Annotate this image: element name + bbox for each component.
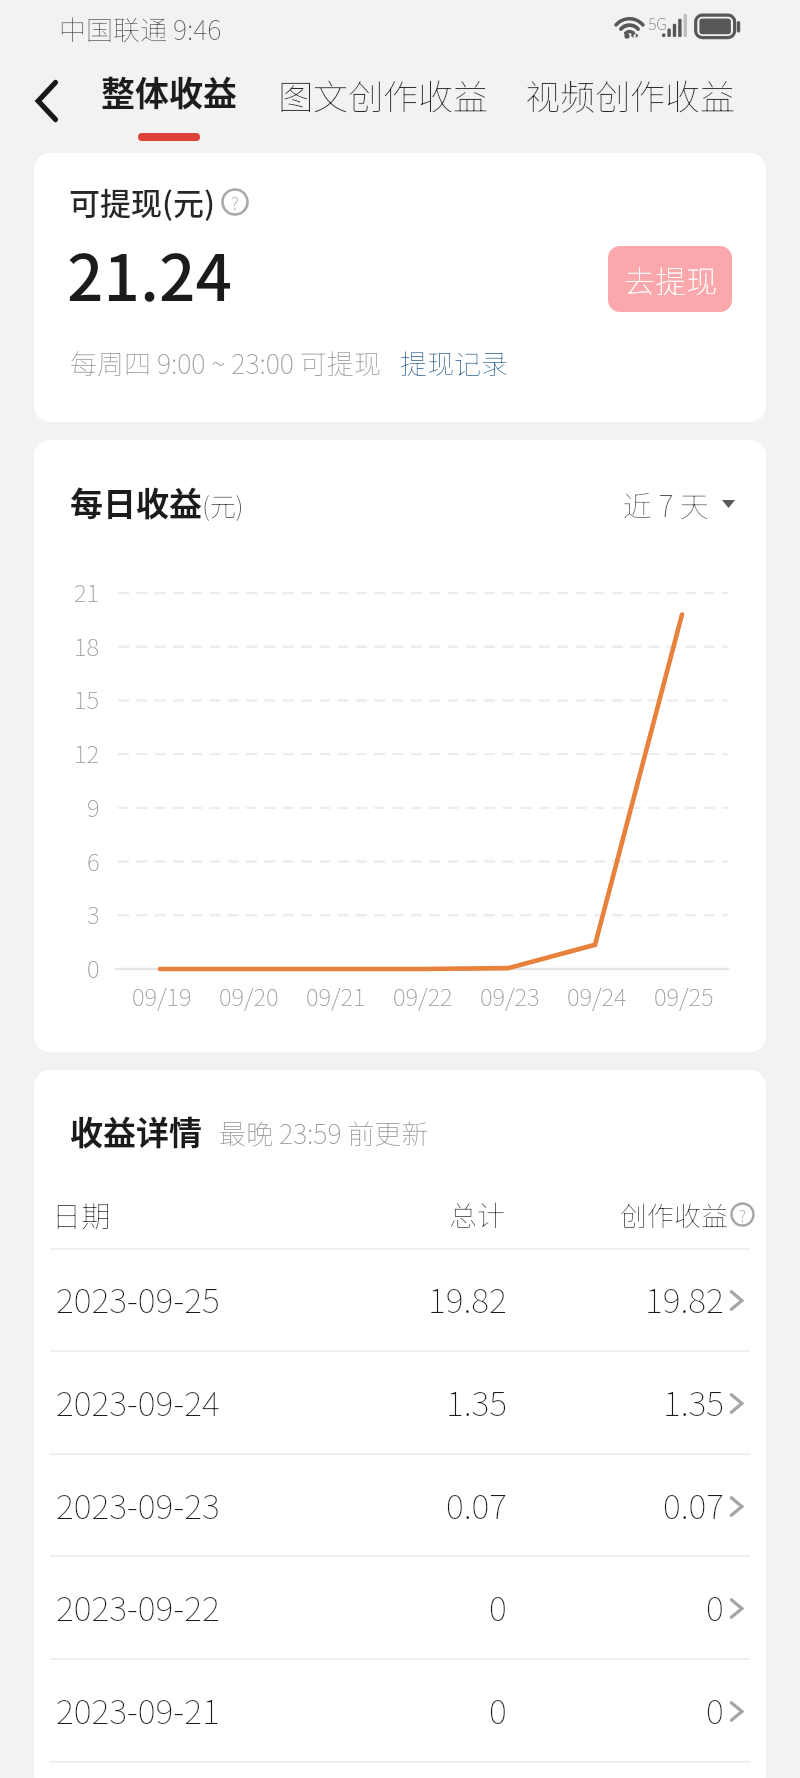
staticText: 2023-09-25 [56, 1274, 220, 1323]
button[interactable]: 2023-09-25 [34, 1247, 766, 1350]
staticText: 09/19 [132, 978, 192, 1013]
staticText: 1.35 [446, 1377, 507, 1426]
staticText: 0.07 [446, 1480, 507, 1529]
button[interactable]: 视频创作收益 [525, 69, 736, 120]
staticText: 去提现 [624, 257, 717, 302]
staticText: 0.07 [663, 1480, 724, 1529]
staticText: 每日收益 [70, 478, 202, 526]
staticText: 09/23 [480, 978, 540, 1013]
staticText: 2023-09-22 [56, 1582, 220, 1631]
staticText: 0 [87, 950, 100, 985]
staticText: 每周四 9:00 ~ 23:00 可提现 [70, 343, 381, 382]
button[interactable]: 提现记录 [400, 343, 508, 382]
staticText: 视频创作收益 [525, 69, 736, 120]
button[interactable]: 2023-09-24 [34, 1350, 766, 1453]
button[interactable]: Help [221, 188, 249, 216]
staticText: 近 7 天 [623, 483, 709, 525]
staticText: 19.82 [645, 1274, 724, 1323]
staticText: 09/25 [654, 978, 714, 1013]
staticText: 2023-09-21 [56, 1685, 220, 1734]
staticText: 09/20 [219, 978, 279, 1013]
staticText: 中国联通 9:46 [59, 9, 222, 48]
staticText: 最晚 23:59 前更新 [219, 1113, 429, 1152]
button[interactable]: 整体收益 [101, 67, 237, 141]
staticText: ? [231, 189, 239, 215]
button[interactable]: 2023-09-23 [34, 1453, 766, 1556]
staticText: 图文创作收益 [278, 69, 489, 120]
staticText: 6 [87, 843, 100, 878]
staticText: 0 [706, 1685, 724, 1734]
staticText: 5G [648, 11, 667, 34]
staticText: 0 [489, 1685, 507, 1734]
staticText: 09/24 [567, 978, 627, 1013]
staticText: 12 [74, 735, 100, 770]
staticText: 18 [74, 628, 100, 663]
staticText: 3 [87, 896, 100, 931]
staticText: 收益详情 [70, 1107, 202, 1155]
staticText: 2023-09-24 [56, 1377, 220, 1426]
button[interactable]: 去提现 [608, 246, 732, 312]
staticText: 0 [706, 1582, 724, 1631]
staticText: 19.82 [428, 1274, 507, 1323]
staticText: 日期 [52, 1193, 111, 1235]
staticText: 2023-09-23 [56, 1480, 220, 1529]
staticText: 0 [489, 1582, 507, 1631]
staticText: 可提现(元) [69, 179, 216, 224]
staticText: 创作收益 [620, 1195, 728, 1234]
button[interactable]: 图文创作收益 [278, 69, 489, 120]
button[interactable]: 近 7 天 [623, 483, 735, 525]
staticText: 提现记录 [400, 343, 508, 382]
staticText: 1.35 [663, 1377, 724, 1426]
staticText: ? [739, 1203, 746, 1226]
button[interactable]: 2023-09-21 [34, 1658, 766, 1761]
staticText: 09/22 [393, 978, 453, 1013]
staticText: 总计 [449, 1194, 506, 1235]
staticText: 整体收益 [101, 67, 237, 116]
staticText: 21 [74, 574, 100, 609]
staticText: 09/21 [306, 978, 366, 1013]
staticText: 21.24 [67, 227, 232, 320]
staticText: 9 [87, 789, 100, 824]
staticText: (元) [202, 486, 244, 524]
button[interactable]: Back [21, 70, 73, 122]
button[interactable]: Help [730, 1202, 755, 1227]
staticText: 15 [74, 681, 100, 716]
button[interactable]: 2023-09-22 [34, 1555, 766, 1658]
